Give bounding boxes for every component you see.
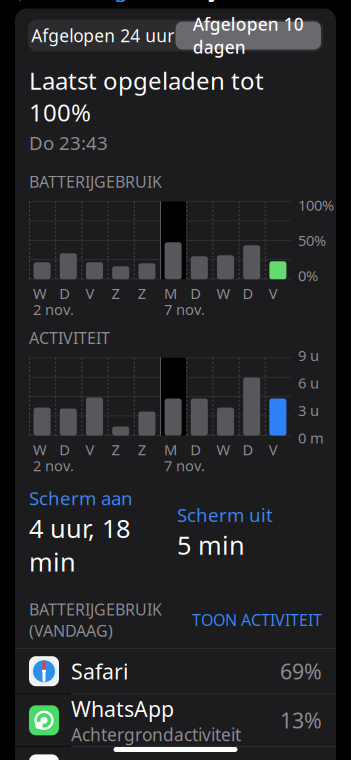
staticText: D — [190, 283, 201, 303]
staticText: M — [164, 283, 177, 303]
staticText: Scherm aan — [29, 485, 133, 510]
staticText: 13% — [280, 706, 322, 734]
staticText: V — [269, 440, 278, 459]
button[interactable]: TOON ACTIVITEIT — [192, 609, 322, 630]
staticText: WhatsApp — [71, 695, 174, 723]
staticText: 6 u — [298, 373, 319, 393]
staticText: Afgelopen 24 uur — [31, 24, 174, 47]
button[interactable]: N — [15, 747, 336, 760]
staticText: 2 nov. — [33, 456, 74, 475]
staticText: BATTERIJGEBRUIK — [29, 171, 162, 192]
staticText: D — [59, 283, 70, 303]
staticText: ACTIVITEIT — [29, 327, 110, 348]
staticText: D — [59, 440, 70, 459]
staticText: BATTERIJGEBRUIK (VANDAAG) — [29, 599, 162, 641]
staticText: 100% — [298, 195, 334, 215]
button[interactable]: Afgelopen 24 uur — [30, 21, 175, 49]
staticText: Afgelopen 10 dagen — [193, 12, 304, 58]
staticText: Achtergrondactiviteit — [71, 723, 241, 746]
staticText: W — [216, 283, 230, 303]
staticText: 7 nov. — [164, 456, 205, 475]
staticText: V — [269, 283, 278, 303]
staticText: Batterij — [135, 0, 216, 2]
staticText: 2 nov. — [33, 299, 74, 319]
staticText: D — [190, 440, 201, 459]
button[interactable]: Afgelopen 10 dagen — [175, 21, 321, 49]
staticText: 3 u — [298, 400, 319, 420]
staticText: 5 min — [177, 528, 245, 562]
button[interactable]: Safari — [15, 649, 336, 694]
staticText: 0 m — [298, 428, 324, 447]
staticText: Instellingen — [28, 0, 155, 2]
button[interactable]: ‹ — [8, 0, 159, 8]
staticText: M — [164, 440, 177, 459]
staticText: Z — [112, 440, 120, 459]
staticText: Z — [138, 440, 146, 459]
staticText: W — [33, 283, 47, 303]
staticText: W — [33, 440, 47, 459]
staticText: D — [243, 283, 254, 303]
staticText: 9 u — [298, 346, 319, 365]
staticText: Z — [112, 283, 120, 303]
staticText: 69% — [280, 657, 322, 685]
staticText: V — [85, 440, 94, 459]
staticText: ‹ — [11, 0, 24, 14]
staticText: 7 nov. — [164, 299, 205, 319]
staticText: V — [85, 283, 94, 303]
staticText: Scherm uit — [177, 502, 273, 527]
staticText: 4 uur, 18 min — [29, 511, 130, 579]
staticText: TOON ACTIVITEIT — [192, 609, 322, 630]
staticText: W — [216, 440, 230, 459]
staticText: 50% — [298, 230, 326, 250]
staticText: 0% — [298, 266, 318, 285]
staticText: Laatst opgeladen tot 100% — [29, 64, 264, 128]
staticText: Safari — [71, 657, 129, 685]
staticText: D — [243, 440, 254, 459]
staticText: Do 23:43 — [29, 130, 108, 155]
button[interactable]: WhatsApp — [15, 694, 336, 746]
staticText: Z — [138, 283, 146, 303]
